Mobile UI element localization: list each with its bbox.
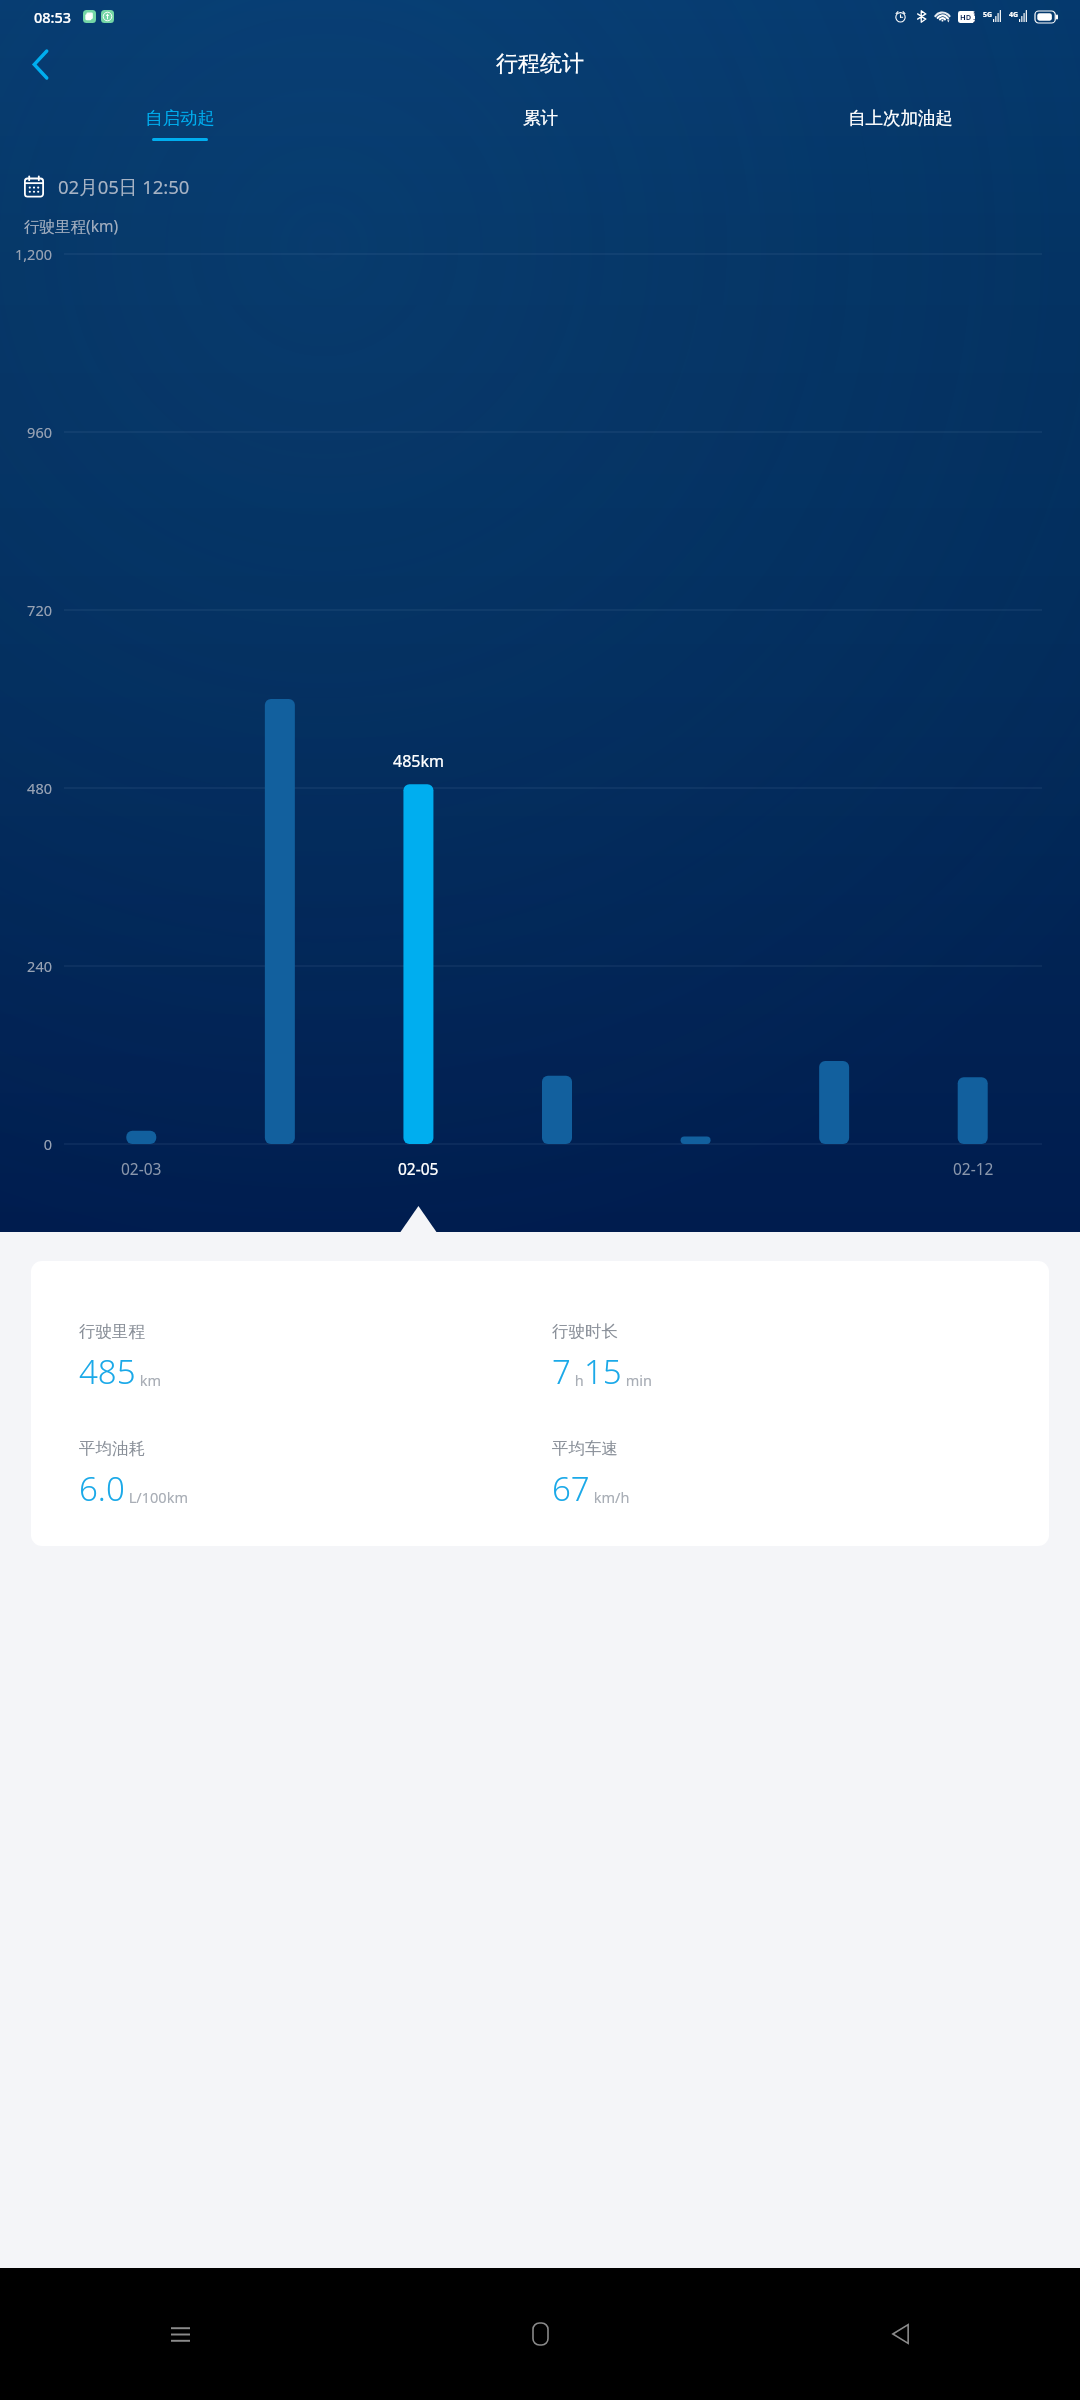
staticText: 15 bbox=[584, 1349, 622, 1394]
staticText: 720 bbox=[27, 600, 52, 620]
staticText: 485 bbox=[79, 1349, 136, 1394]
staticText: 6.0 bbox=[79, 1466, 125, 1511]
staticText: 480 bbox=[27, 778, 52, 798]
staticText: km/h bbox=[590, 1487, 630, 1507]
staticText: 行驶时长 bbox=[552, 1321, 618, 1342]
staticText: 平均车速 bbox=[552, 1438, 618, 1459]
staticText: 02月05日 12:50 bbox=[58, 174, 190, 199]
staticText: h bbox=[571, 1370, 584, 1390]
button[interactable]: Home bbox=[360, 2268, 720, 2400]
staticText: 240 bbox=[27, 956, 52, 976]
staticText: 960 bbox=[27, 422, 52, 442]
staticText: 5G bbox=[983, 10, 993, 19]
staticText: 平均油耗 bbox=[79, 1438, 145, 1459]
staticText: HD bbox=[960, 12, 972, 22]
staticText: 1,200 bbox=[14, 244, 52, 264]
staticText: 08:53 bbox=[34, 7, 72, 27]
button[interactable]: 自启动起 bbox=[0, 95, 360, 153]
staticText: 2 bbox=[973, 18, 975, 23]
staticText: 7 bbox=[552, 1349, 571, 1394]
staticText: 累计 bbox=[523, 107, 558, 129]
staticText: 行驶里程(km) bbox=[24, 215, 119, 236]
staticText: 自上次加油起 bbox=[848, 107, 953, 129]
staticText: 67 bbox=[552, 1466, 590, 1511]
button[interactable]: Back bbox=[720, 2268, 1080, 2400]
staticText: 1 bbox=[973, 11, 975, 18]
button[interactable]: 累计 bbox=[360, 95, 720, 153]
staticText: km bbox=[136, 1370, 162, 1390]
staticText: 行驶里程 bbox=[79, 1321, 145, 1342]
staticText: L/100km bbox=[125, 1487, 188, 1507]
staticText: 4G bbox=[1009, 10, 1019, 19]
button[interactable]: 行驶里程 bbox=[31, 1261, 1049, 1546]
staticText: min bbox=[622, 1370, 653, 1390]
staticText: 02-03 bbox=[121, 1158, 162, 1179]
staticText: 02-12 bbox=[953, 1158, 994, 1179]
button[interactable]: 自上次加油起 bbox=[720, 95, 1080, 153]
staticText: 02-05 bbox=[398, 1158, 439, 1179]
staticText: 自启动起 bbox=[145, 107, 215, 129]
button[interactable]: Recents bbox=[0, 2268, 360, 2400]
staticText: 行程统计 bbox=[496, 50, 584, 78]
staticText: 0 bbox=[43, 1134, 52, 1154]
button[interactable]: 返回 bbox=[14, 38, 66, 90]
staticText: 485km bbox=[393, 750, 444, 772]
